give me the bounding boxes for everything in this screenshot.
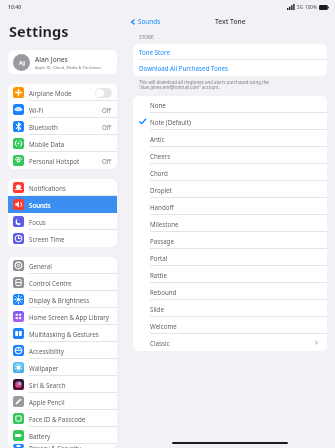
staticText: Off — [102, 123, 112, 131]
staticText: 100% — [305, 4, 317, 10]
button[interactable]: General — [8, 257, 117, 274]
staticText: Siri & Search — [29, 381, 112, 389]
staticText: Notifications — [29, 184, 112, 192]
staticText: Chord — [150, 169, 319, 177]
button[interactable]: Battery — [8, 427, 117, 444]
staticText: Settings — [9, 21, 69, 41]
button[interactable]: Sounds — [130, 17, 161, 26]
staticText: Milestone — [150, 220, 319, 228]
staticText: Personal Hotspot — [29, 157, 102, 165]
button[interactable]: Privacy & Security — [8, 444, 117, 448]
button[interactable]: Focus — [8, 213, 117, 230]
button[interactable]: Accessibility — [8, 342, 117, 359]
staticText: General — [29, 262, 112, 270]
button[interactable]: Classic — [133, 334, 327, 351]
button[interactable]: Control Centre — [8, 274, 117, 291]
button[interactable]: Display & Brightness — [8, 291, 117, 308]
staticText: Airplane Mode — [29, 89, 95, 97]
button[interactable]: Droplet — [133, 181, 327, 198]
staticText: Focus — [29, 218, 112, 226]
staticText: Rattle — [150, 271, 319, 279]
staticText: Screen Time — [29, 235, 112, 243]
staticText: Battery — [29, 432, 112, 440]
button[interactable]: Tone Store — [133, 44, 327, 60]
staticText: Text Tone — [215, 17, 246, 26]
staticText: Sounds — [138, 17, 161, 26]
staticText: Passage — [150, 237, 319, 245]
button[interactable]: Multitasking & Gestures — [8, 325, 117, 342]
button[interactable]: Screen Time — [8, 230, 117, 247]
staticText: Droplet — [150, 186, 319, 194]
staticText: Off — [102, 157, 112, 165]
staticText: This will download all ringtones and ale… — [139, 79, 269, 90]
staticText: Antic — [150, 135, 319, 143]
staticText: Wi-Fi — [29, 106, 102, 114]
staticText: Handoff — [150, 203, 319, 211]
button[interactable]: Mobile Data — [8, 135, 117, 152]
staticText: Note (Default) — [150, 118, 319, 126]
staticText: Alan Jones — [35, 55, 68, 64]
staticText: Portal — [150, 254, 319, 262]
staticText: Cheers — [150, 152, 319, 160]
button[interactable]: Sounds — [8, 196, 117, 213]
staticText: 10:40 — [8, 3, 22, 10]
button[interactable]: Rattle — [133, 266, 327, 283]
staticText: Tone Store — [139, 48, 170, 56]
staticText: Bluetooth — [29, 123, 102, 131]
button[interactable]: Rebound — [133, 283, 327, 300]
button[interactable]: Face ID & Passcode — [8, 410, 117, 427]
button[interactable]: Milestone — [133, 215, 327, 232]
button[interactable]: Antic — [133, 130, 327, 147]
button[interactable]: Slide — [133, 300, 327, 317]
staticText: AJ — [19, 59, 25, 67]
button[interactable]: Chord — [133, 164, 327, 181]
button[interactable]: Notifications — [8, 179, 117, 196]
staticText: Rebound — [150, 288, 319, 296]
button[interactable]: Personal Hotspot — [8, 152, 117, 169]
button[interactable]: None — [133, 96, 327, 113]
staticText: Classic — [150, 339, 314, 347]
staticText: Apple ID, iCloud, Media & Purchases — [35, 65, 102, 70]
button[interactable]: Wi-Fi — [8, 101, 117, 118]
button[interactable]: Passage — [133, 232, 327, 249]
staticText: 5G — [297, 4, 303, 10]
staticText: Display & Brightness — [29, 296, 112, 304]
button[interactable]: Welcome — [133, 317, 327, 334]
button[interactable]: Siri & Search — [8, 376, 117, 393]
button[interactable]: Portal — [133, 249, 327, 266]
staticText: Face ID & Passcode — [29, 415, 112, 423]
button[interactable]: Apple Pencil — [8, 393, 117, 410]
button[interactable]: Wallpaper — [8, 359, 117, 376]
staticText: Multitasking & Gestures — [29, 330, 112, 338]
staticText: STORE — [139, 34, 154, 41]
staticText: Control Centre — [29, 279, 112, 287]
staticText: Wallpaper — [29, 364, 112, 372]
button[interactable]: Note (Default) — [133, 113, 327, 130]
staticText: Accessibility — [29, 347, 112, 355]
button[interactable]: Bluetooth — [8, 118, 117, 135]
staticText: Apple Pencil — [29, 398, 112, 406]
staticText: Welcome — [150, 322, 319, 330]
staticText: Mobile Data — [29, 140, 112, 148]
button[interactable]: Download All Purchased Tones — [133, 60, 327, 76]
staticText: Slide — [150, 305, 319, 313]
staticText: Privacy & Security — [29, 444, 112, 448]
button[interactable]: Cheers — [133, 147, 327, 164]
staticText: Off — [102, 106, 112, 114]
staticText: Home Screen & App Library — [29, 313, 112, 321]
button[interactable]: Handoff — [133, 198, 327, 215]
staticText: Download All Purchased Tones — [139, 64, 228, 72]
button[interactable]: AJ — [8, 50, 117, 74]
button[interactable]: Home Screen & App Library — [8, 308, 117, 325]
button[interactable]: Airplane Mode — [8, 84, 117, 101]
staticText: Sounds — [29, 201, 112, 209]
button[interactable]: Airplane Mode toggle — [95, 88, 112, 98]
staticText: None — [150, 101, 319, 109]
